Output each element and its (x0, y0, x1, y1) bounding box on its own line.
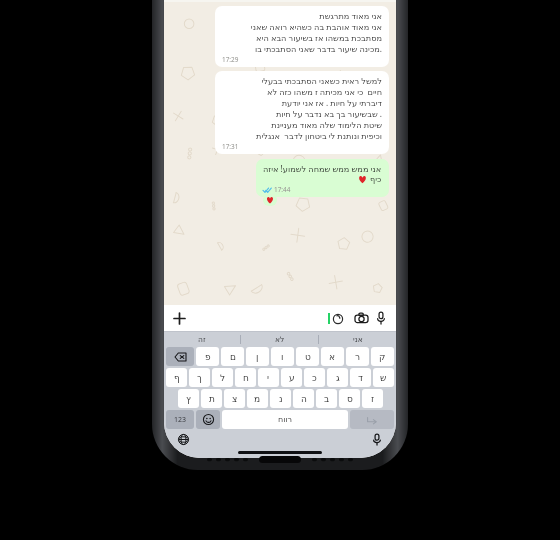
button[interactable]: ס (339, 389, 360, 408)
button[interactable]: 123 (166, 410, 194, 429)
staticText: ד (358, 373, 363, 383)
button[interactable]: ה (293, 389, 314, 408)
button[interactable]: ב (316, 389, 337, 408)
staticText: חיים כי אני מכיתה ז משהו כזה לא (266, 86, 382, 97)
staticText: אני מאוד מתרגשת (319, 10, 382, 21)
button[interactable]: Emoji (196, 410, 220, 429)
staticText: ץ (186, 394, 191, 404)
staticText: ג (336, 373, 340, 383)
button[interactable]: ח (235, 368, 256, 387)
staticText: לא (275, 335, 285, 344)
staticText: ף (174, 373, 180, 383)
button[interactable]: זה (164, 332, 240, 347)
staticText: ז (371, 394, 375, 404)
button[interactable]: כ (304, 368, 325, 387)
staticText: ו (281, 352, 284, 362)
button[interactable] (192, 310, 347, 327)
staticText: אני ממש ממש שמחה לשמוע! איזה (263, 163, 382, 174)
button[interactable]: ן (246, 347, 269, 366)
button[interactable]: ע (281, 368, 302, 387)
staticText: ם (230, 352, 236, 362)
button[interactable]: י (258, 368, 279, 387)
button[interactable]: Heart reaction (266, 196, 274, 204)
staticText: ט (305, 352, 311, 362)
staticText: נ (279, 394, 283, 404)
button[interactable]: ק (371, 347, 394, 366)
staticText: 123 (174, 415, 187, 425)
staticText: ך (197, 373, 202, 383)
button[interactable]: ם (221, 347, 244, 366)
staticText: ע (289, 373, 295, 383)
button[interactable]: למשל ראית כשאני הסתבכתי בבעלי (215, 71, 389, 154)
staticText: 17:44 (274, 185, 291, 194)
button[interactable]: ש (373, 368, 394, 387)
staticText: ה (301, 394, 307, 404)
staticText: ס (347, 394, 353, 404)
staticText: אני מאוד אוהבת בה כשהיא רואה שאני (250, 21, 382, 32)
staticText: ב (324, 394, 330, 404)
staticText: מכינה שיעור בדבר שאני הסתבכתי בו. (254, 43, 382, 54)
button[interactable]: ך (189, 368, 210, 387)
button[interactable]: א (321, 347, 344, 366)
staticText: כיף (370, 174, 382, 184)
staticText: ת (209, 394, 215, 404)
staticText: דיברתי על חיות . אז אני יודעת (281, 97, 382, 108)
button[interactable]: רווח (222, 410, 348, 429)
staticText: ש (380, 373, 387, 383)
button[interactable]: ף (166, 368, 187, 387)
staticText: וכיפית ונותנת לי ביטחון לדבר אנגלית (256, 130, 382, 141)
button[interactable]: Camera (352, 309, 370, 327)
staticText: ל (220, 373, 226, 383)
staticText: רווח (278, 415, 293, 424)
button[interactable]: ל (212, 368, 233, 387)
button[interactable]: ת (201, 389, 222, 408)
staticText: מ (254, 394, 261, 404)
button[interactable]: אני מאוד מתרגשת (215, 6, 389, 67)
staticText: ק (379, 352, 386, 362)
button[interactable]: Backspace (166, 347, 194, 366)
staticText: זה (198, 335, 206, 344)
button[interactable]: ו (271, 347, 294, 366)
button[interactable]: ץ (178, 389, 199, 408)
staticText: אני (353, 335, 363, 344)
staticText: 17:31 (222, 142, 239, 151)
button[interactable]: Dictation (370, 432, 384, 446)
staticText: ח (243, 373, 249, 383)
button[interactable]: מ (247, 389, 268, 408)
staticText: ר (355, 352, 361, 362)
button[interactable]: ז (362, 389, 383, 408)
button[interactable]: Change keyboard (176, 432, 190, 446)
button[interactable]: ד (350, 368, 371, 387)
button[interactable]: Return (350, 410, 394, 429)
button[interactable]: נ (270, 389, 291, 408)
staticText: מסתבכת במשהו אז בשיעור הבא היא (256, 32, 382, 43)
staticText: י (267, 373, 270, 383)
button[interactable]: אני (319, 332, 396, 347)
button[interactable]: ר (346, 347, 369, 366)
staticText: כ (312, 373, 317, 383)
staticText: צ (232, 394, 238, 404)
staticText: פ (205, 352, 211, 362)
button[interactable]: Voice message (372, 309, 390, 327)
staticText: שיטת הלימוד שלה מאוד מעניינת (271, 119, 382, 130)
button[interactable]: ג (327, 368, 348, 387)
staticText: 17:29 (222, 55, 239, 64)
button[interactable]: אני ממש ממש שמחה לשמוע! איזה (256, 159, 389, 197)
button[interactable]: Attach (170, 309, 188, 327)
button[interactable]: לא (241, 332, 318, 347)
button[interactable]: ט (296, 347, 319, 366)
button[interactable]: פ (196, 347, 219, 366)
button[interactable]: צ (224, 389, 245, 408)
staticText: ן (256, 352, 259, 362)
staticText: שבשיעור בך בא נדבר על חיות . (275, 108, 382, 119)
staticText: למשל ראית כשאני הסתבכתי בבעלי (261, 75, 382, 86)
staticText: א (329, 352, 336, 362)
